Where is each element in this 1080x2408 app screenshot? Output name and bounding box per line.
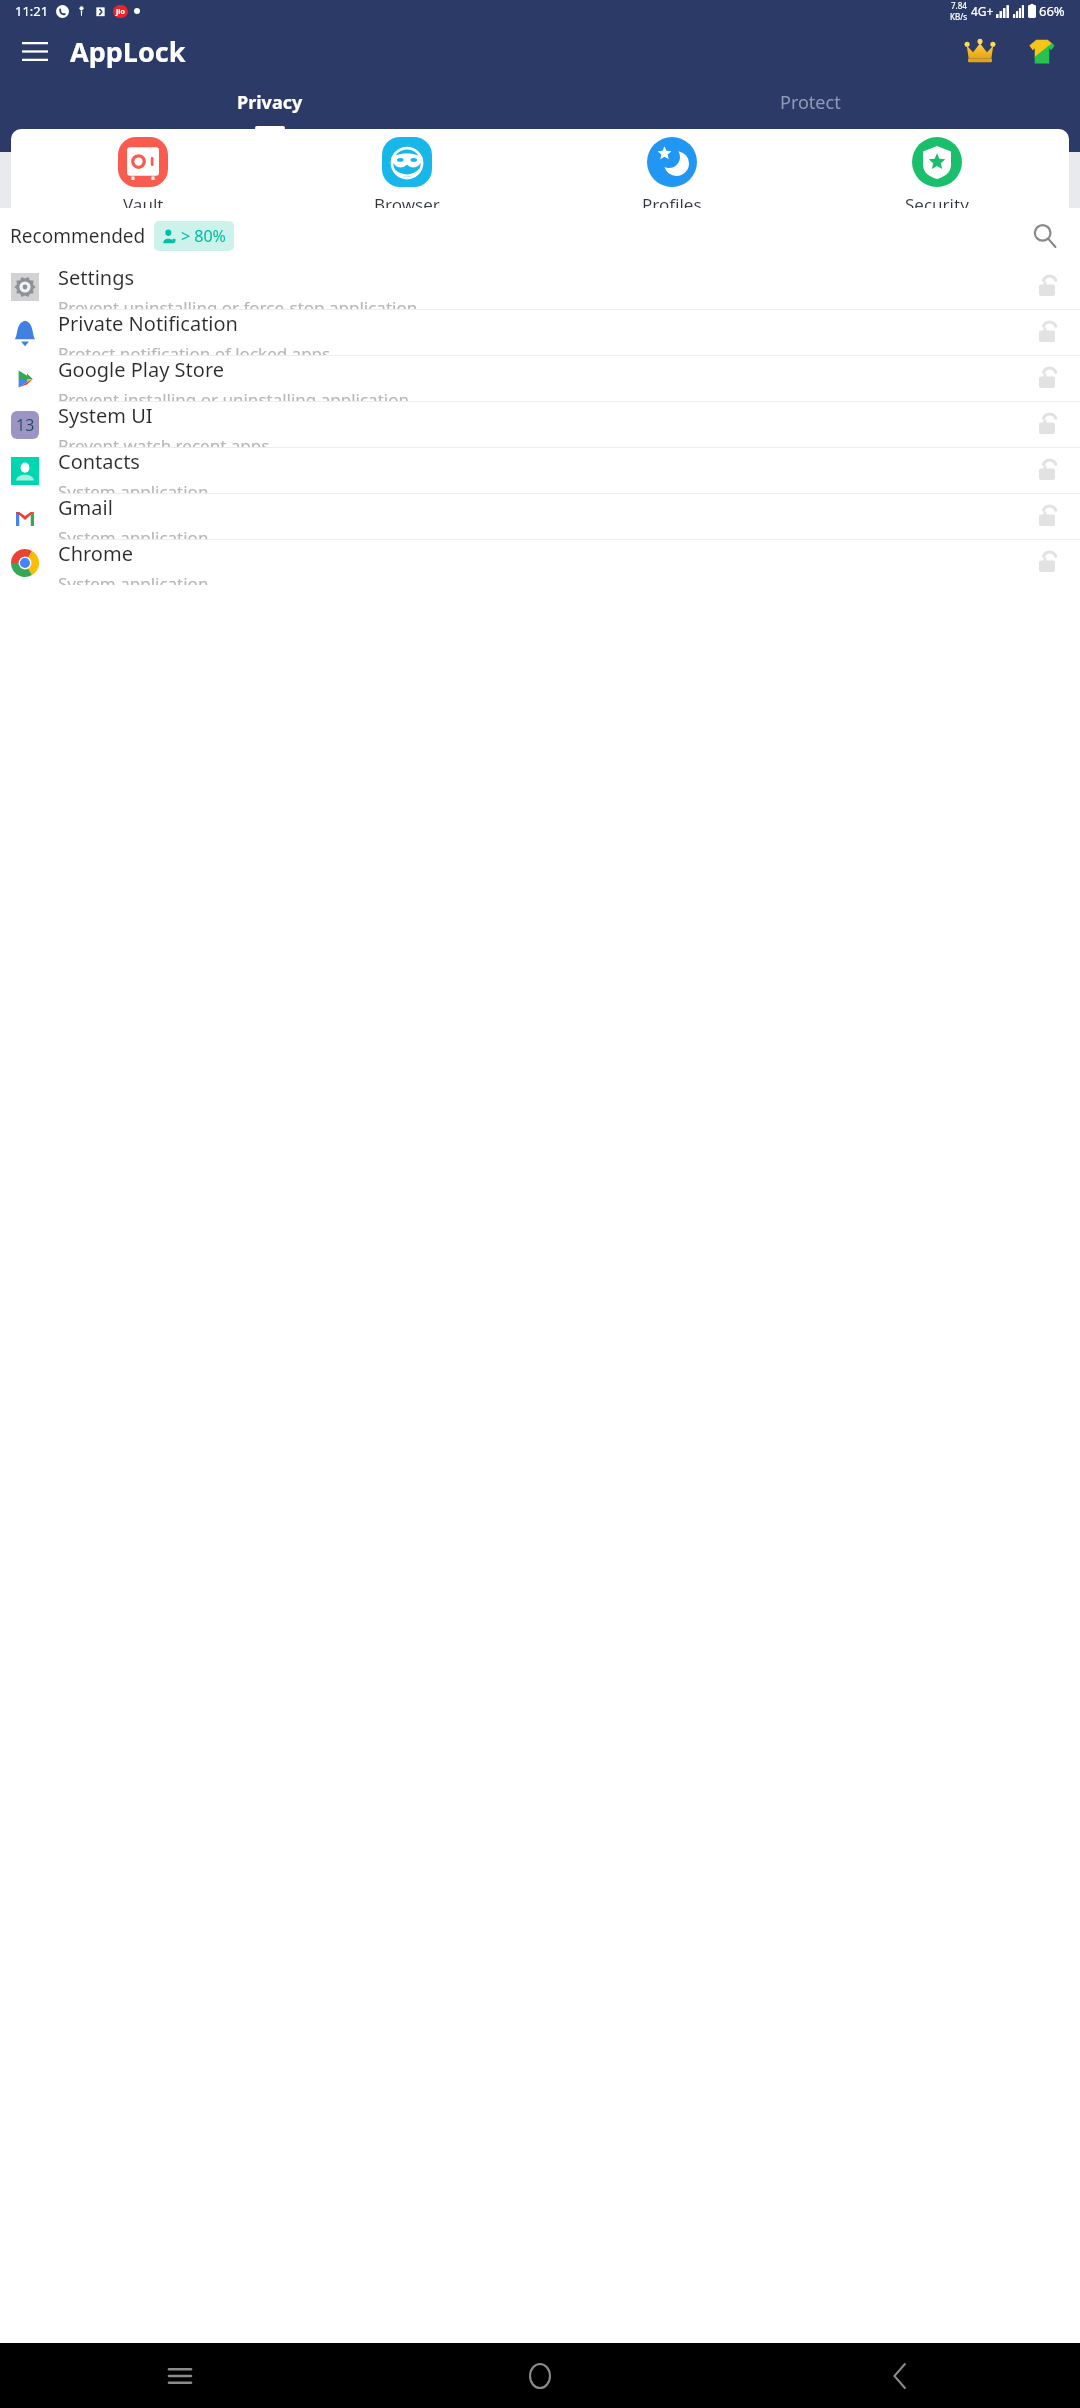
staticText: Prevent uninstalling or force-stop appli…: [58, 296, 418, 309]
staticText: Protect: [780, 90, 841, 115]
staticText: Contacts: [58, 448, 140, 475]
button[interactable]: Lock Private Notification: [1032, 316, 1066, 350]
staticText: Profiles: [642, 193, 702, 216]
button[interactable]: Vault: [11, 137, 275, 216]
staticText: Recommended: [10, 223, 146, 249]
button[interactable]: Browser: [275, 137, 539, 216]
button[interactable]: Profiles: [539, 137, 804, 216]
staticText: 66%: [1039, 2, 1065, 20]
button[interactable]: Search: [1024, 215, 1066, 257]
button[interactable]: Recent apps: [0, 2343, 360, 2408]
button[interactable]: Google Play Store: [0, 356, 1080, 402]
staticText: System application: [58, 572, 209, 585]
button[interactable]: Private Notification: [0, 310, 1080, 356]
staticText: 4G+: [971, 3, 994, 19]
staticText: System application: [58, 480, 209, 493]
button[interactable]: Privacy: [0, 80, 540, 142]
staticText: Google Play Store: [58, 356, 225, 383]
button[interactable]: Security: [804, 137, 1069, 216]
staticText: AppLock: [70, 33, 186, 70]
staticText: System UI: [58, 402, 153, 429]
staticText: KB/s: [950, 11, 967, 22]
button[interactable]: Menu: [12, 28, 58, 74]
button[interactable]: Lock Contacts: [1032, 454, 1066, 488]
button[interactable]: Lock Settings: [1032, 270, 1066, 304]
button[interactable]: VIP: [954, 25, 1006, 77]
staticText: Gmail: [58, 494, 113, 521]
staticText: Security: [905, 193, 969, 216]
staticText: > 80%: [181, 225, 226, 247]
button[interactable]: Lock Chrome: [1032, 546, 1066, 580]
staticText: Protect notification of locked apps: [58, 342, 331, 355]
button[interactable]: Lock Google Play Store: [1032, 362, 1066, 396]
staticText: 13: [16, 414, 35, 436]
button[interactable]: Back: [720, 2343, 1080, 2408]
button[interactable]: Protect: [540, 80, 1080, 142]
button[interactable]: 13: [0, 402, 1080, 448]
button[interactable]: Chrome: [0, 540, 1080, 585]
button[interactable]: Contacts: [0, 448, 1080, 494]
staticText: Vault: [123, 193, 164, 216]
staticText: Chrome: [58, 540, 133, 567]
staticText: Privacy: [237, 90, 303, 115]
button[interactable]: Lock Gmail: [1032, 500, 1066, 534]
staticText: Prevent watch recent apps: [58, 434, 270, 447]
staticText: Private Notification: [58, 310, 238, 337]
staticText: 11:21: [15, 2, 49, 20]
button[interactable]: Themes: [1016, 25, 1068, 77]
staticText: System application: [58, 526, 209, 539]
staticText: Settings: [58, 264, 135, 291]
button[interactable]: Gmail: [0, 494, 1080, 540]
staticText: Jio: [116, 7, 125, 17]
button[interactable]: Home: [360, 2343, 720, 2408]
button[interactable]: Lock System UI: [1032, 408, 1066, 442]
staticText: Prevent installing or uninstalling appli…: [58, 388, 409, 401]
button[interactable]: Settings: [0, 264, 1080, 310]
staticText: 7.84: [951, 0, 967, 11]
button[interactable]: > 80%: [154, 221, 234, 251]
staticText: Browser: [374, 193, 440, 216]
